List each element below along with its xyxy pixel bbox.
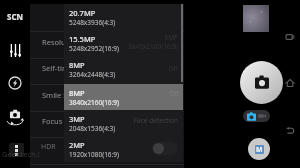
staticText: 2MP <box>69 140 85 150</box>
button[interactable]: 8MP <box>64 56 183 82</box>
button[interactable]: HDR <box>36 141 60 153</box>
button[interactable]: SCN <box>0 7 30 25</box>
staticText: HDR <box>41 142 56 152</box>
staticText: Geektech.i <box>2 149 40 159</box>
staticText: 5248x2952(16:9) <box>69 44 119 53</box>
staticText: 2048x1536(4:3) <box>69 124 116 133</box>
button[interactable]: Recents <box>286 34 294 40</box>
staticText: Smile Shutter <box>42 90 90 100</box>
button[interactable]: 15.5MP <box>64 30 183 56</box>
button[interactable]: 8MP <box>64 84 183 110</box>
staticText: Off <box>100 64 178 73</box>
button[interactable]: Movie Creator <box>248 138 270 160</box>
staticText: 8MP <box>69 60 85 70</box>
staticText: 15.5MP <box>69 34 96 44</box>
button[interactable]: Home <box>286 79 294 87</box>
staticText: 8MP <box>69 88 85 98</box>
staticText: Resolution <box>42 37 80 47</box>
button[interactable]: Resolution <box>30 29 184 55</box>
staticText: Off <box>169 89 179 98</box>
button[interactable]: Camera / video mode <box>243 110 270 122</box>
button[interactable]: 20.7MP <box>64 4 183 30</box>
staticText: 5248x3936(4:3) <box>69 18 116 27</box>
staticText: 1920x1080(16:9) <box>69 150 119 159</box>
staticText: M <box>256 145 263 154</box>
button[interactable]: 2MP <box>64 136 183 162</box>
staticText: Self-timer <box>42 63 77 73</box>
staticText: Face detection <box>100 116 178 125</box>
button[interactable]: Smile Shutter <box>30 82 184 108</box>
button[interactable]: More options <box>9 143 24 157</box>
button[interactable]: Settings <box>3 38 27 62</box>
button[interactable]: 3MP <box>64 110 183 136</box>
button[interactable]: Self-timer <box>30 55 184 81</box>
button[interactable]: Gallery <box>243 5 269 32</box>
staticText: 20.7MP <box>69 8 96 18</box>
staticText: 3840x2160(16:9) <box>128 42 178 51</box>
staticText: 3264x2448(4:3) <box>69 70 116 79</box>
button[interactable]: Back <box>286 127 294 134</box>
button[interactable]: Flash <box>3 71 27 95</box>
staticText: SCN <box>7 11 24 22</box>
button[interactable]: Object tracking toggle <box>152 142 178 155</box>
staticText: Focus mode <box>42 116 85 126</box>
button[interactable]: Switch camera <box>3 106 27 130</box>
staticText: 8MP <box>164 33 178 42</box>
staticText: 3840x2160(16:9) <box>69 98 119 107</box>
button[interactable]: Focus mode <box>30 108 184 134</box>
button[interactable]: Shutter <box>240 61 283 104</box>
staticText: 3MP <box>69 114 85 124</box>
